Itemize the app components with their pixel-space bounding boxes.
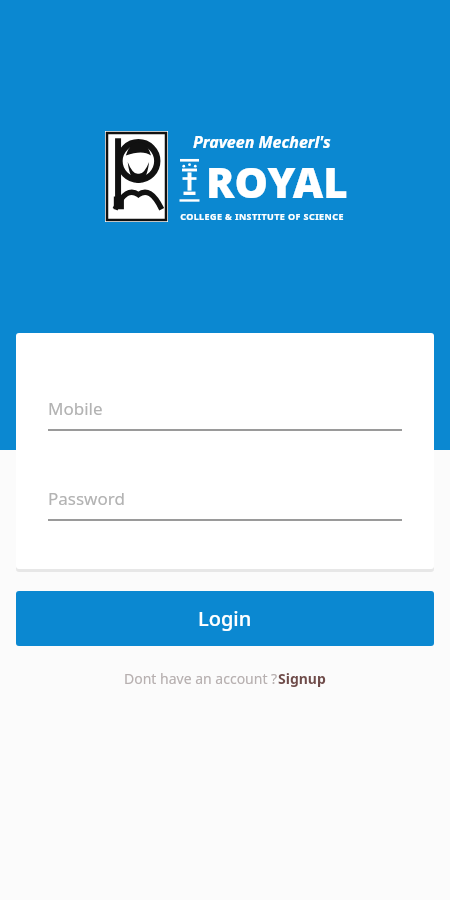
staticText: COLLEGE & INSTITUTE OF SCIENCE xyxy=(180,210,344,222)
staticText: Dont have an account ? xyxy=(124,669,278,688)
staticText: Login xyxy=(198,605,252,632)
staticText: Mobile xyxy=(48,397,103,420)
button[interactable]: Login xyxy=(16,591,434,646)
button[interactable]: Mobile xyxy=(16,395,434,443)
staticText: Password xyxy=(48,487,125,510)
button[interactable]: Signup xyxy=(278,669,326,688)
button[interactable]: Password xyxy=(16,485,434,533)
staticText: ROYAL xyxy=(206,153,348,210)
staticText: Praveen Mecherl's xyxy=(193,131,331,153)
staticText: Signup xyxy=(278,669,326,688)
